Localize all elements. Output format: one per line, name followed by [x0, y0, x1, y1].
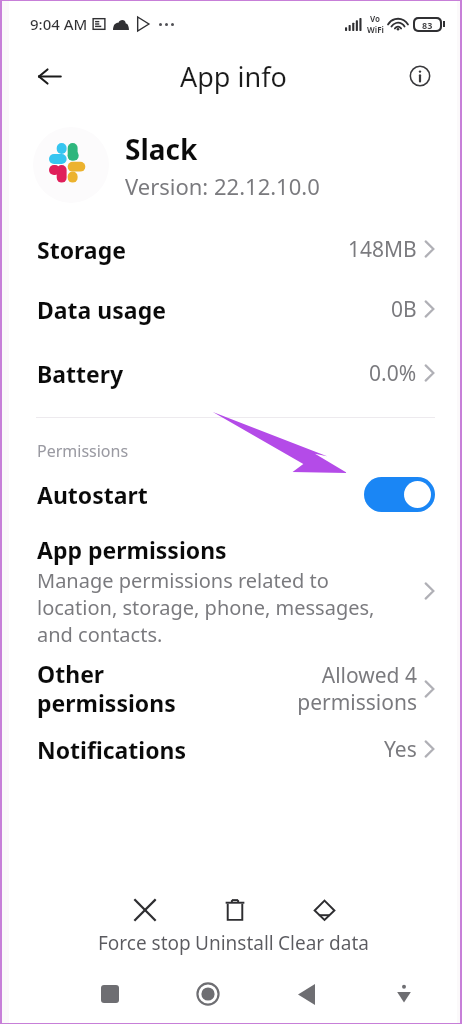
button[interactable]: Storage: [9, 221, 457, 277]
button[interactable]: Home: [185, 971, 231, 1017]
button[interactable]: App permissions: [9, 526, 457, 654]
staticText: Vo: [370, 13, 381, 24]
staticText: 9:04 AM: [30, 14, 88, 34]
staticText: 0B: [391, 295, 417, 324]
staticText: Allowed 4 permissions: [297, 661, 417, 716]
staticText: Manage permissions related to location, …: [37, 567, 414, 648]
button[interactable]: Recents: [87, 971, 133, 1017]
staticText: Permissions: [37, 440, 129, 462]
staticText: 148MB: [348, 235, 417, 264]
staticText: Force stop: [98, 930, 191, 956]
button[interactable]: Autostart: [9, 462, 457, 526]
button[interactable]: Clear data: [276, 897, 371, 956]
staticText: Battery: [37, 358, 124, 389]
staticText: Slack: [125, 130, 198, 168]
staticText: Uninstall: [195, 930, 274, 956]
staticText: Other permissions: [37, 658, 297, 719]
button[interactable]: Autostart toggle: [364, 477, 435, 512]
button[interactable]: Uninstall: [193, 897, 276, 956]
button[interactable]: Battery: [9, 341, 457, 405]
button[interactable]: Back: [283, 971, 329, 1017]
staticText: Autostart: [37, 479, 148, 510]
staticText: Storage: [37, 234, 126, 265]
staticText: WiFi: [367, 24, 384, 35]
staticText: 83: [422, 19, 433, 31]
staticText: Notifications: [37, 734, 187, 765]
button[interactable]: Collapse: [381, 971, 427, 1017]
button[interactable]: Notifications: [9, 723, 457, 775]
staticText: App permissions: [37, 534, 227, 565]
staticText: App info: [180, 58, 287, 95]
staticText: Clear data: [278, 930, 369, 956]
staticText: Data usage: [37, 294, 166, 325]
button[interactable]: Data usage: [9, 277, 457, 341]
button[interactable]: Back: [27, 54, 71, 98]
staticText: Version: 22.12.10.0: [125, 171, 320, 201]
staticText: 0.0%: [369, 359, 417, 388]
button[interactable]: Other permissions: [9, 654, 457, 723]
button[interactable]: Force stop: [96, 897, 193, 956]
button[interactable]: Help: [399, 55, 441, 97]
staticText: Yes: [384, 735, 417, 764]
